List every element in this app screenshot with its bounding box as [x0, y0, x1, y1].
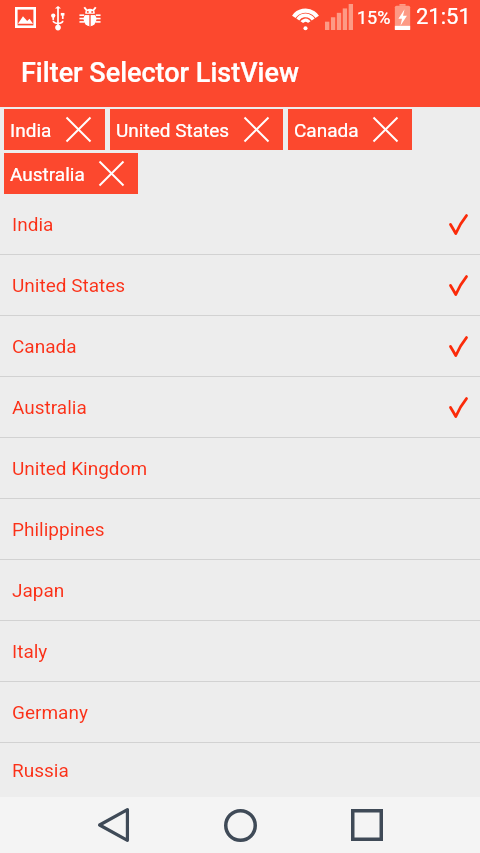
- button[interactable]: Home: [210, 797, 270, 853]
- other: Remove United States: [244, 117, 269, 142]
- staticText: Filter Selector ListView: [21, 57, 300, 89]
- button[interactable]: Australia: [0, 377, 480, 437]
- staticText: 15%: [357, 7, 391, 28]
- button[interactable]: Canada: [288, 109, 412, 150]
- button[interactable]: Japan: [0, 560, 480, 620]
- staticText: Russia: [12, 759, 69, 781]
- staticText: Australia: [12, 396, 87, 418]
- staticText: United States: [116, 119, 230, 141]
- other: Remove Australia: [99, 161, 124, 186]
- other: Remove Canada: [373, 117, 398, 142]
- staticText: India: [10, 119, 52, 141]
- staticText: Japan: [12, 579, 65, 601]
- staticText: India: [12, 213, 54, 235]
- button[interactable]: Canada: [0, 316, 480, 376]
- button[interactable]: United States: [0, 255, 480, 315]
- button[interactable]: India: [4, 109, 105, 150]
- staticText: Germany: [12, 701, 88, 723]
- staticText: 21:51: [416, 4, 471, 30]
- other: Remove India: [66, 117, 91, 142]
- staticText: Australia: [10, 163, 85, 185]
- button[interactable]: United States: [110, 109, 283, 150]
- staticText: Canada: [12, 335, 77, 357]
- button[interactable]: Filter Selector ListView: [0, 36, 480, 107]
- button[interactable]: Recents: [337, 797, 397, 853]
- button[interactable]: Italy: [0, 621, 480, 681]
- staticText: United States: [12, 274, 126, 296]
- staticText: United Kingdom: [12, 457, 148, 479]
- staticText: Italy: [12, 640, 48, 662]
- button[interactable]: Back: [83, 797, 143, 853]
- button[interactable]: Russia: [0, 743, 480, 797]
- staticText: Philippines: [12, 518, 105, 540]
- button[interactable]: Germany: [0, 682, 480, 742]
- button[interactable]: Australia: [4, 153, 138, 194]
- staticText: Canada: [294, 119, 359, 141]
- button[interactable]: Philippines: [0, 499, 480, 559]
- button[interactable]: United Kingdom: [0, 438, 480, 498]
- button[interactable]: India: [0, 194, 480, 254]
